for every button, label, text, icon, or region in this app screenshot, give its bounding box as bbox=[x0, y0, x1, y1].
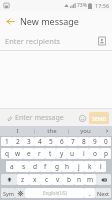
button[interactable]: the bbox=[35, 126, 68, 136]
staticText: g bbox=[55, 162, 59, 171]
staticText: x bbox=[33, 175, 37, 184]
staticText: 9 bbox=[93, 137, 97, 146]
button[interactable]: Shift bbox=[1, 174, 17, 185]
button[interactable]: 4 bbox=[34, 137, 45, 146]
button[interactable]: 9 bbox=[89, 137, 100, 146]
staticText: n bbox=[77, 175, 82, 184]
staticText: w bbox=[15, 149, 21, 158]
button[interactable]: e bbox=[23, 148, 34, 159]
button[interactable]: 1 bbox=[1, 137, 12, 146]
button[interactable]: Attach bbox=[3, 112, 15, 124]
staticText: h bbox=[65, 162, 70, 171]
button[interactable]: Sym bbox=[1, 188, 15, 198]
staticText: 8 bbox=[82, 137, 86, 146]
button[interactable]: h bbox=[62, 161, 73, 172]
button[interactable]: Keyboard settings bbox=[15, 188, 25, 198]
button[interactable]: a bbox=[6, 161, 18, 172]
button[interactable]: . bbox=[84, 188, 95, 198]
staticText: the bbox=[47, 127, 57, 135]
staticText: . bbox=[89, 189, 91, 198]
button[interactable]: v bbox=[52, 174, 63, 185]
button[interactable]: o bbox=[89, 148, 100, 159]
staticText: m bbox=[87, 175, 94, 184]
button[interactable]: i bbox=[78, 148, 89, 159]
button[interactable]: Back bbox=[0, 11, 20, 31]
staticText: q bbox=[5, 149, 9, 158]
button[interactable]: Backspace bbox=[96, 174, 111, 185]
button[interactable]: p bbox=[100, 148, 111, 159]
staticText: j bbox=[78, 162, 80, 171]
staticText: d bbox=[33, 162, 37, 171]
button[interactable]: Enter recipients bbox=[0, 31, 112, 50]
staticText: I bbox=[16, 127, 19, 135]
button[interactable]: n bbox=[74, 174, 85, 185]
staticText: a bbox=[10, 162, 14, 171]
button[interactable]: k bbox=[84, 161, 95, 172]
button[interactable]: y bbox=[56, 148, 67, 159]
staticText: f bbox=[44, 162, 47, 171]
staticText: 4 bbox=[38, 137, 42, 146]
staticText: 17:56 bbox=[95, 2, 110, 9]
staticText: you bbox=[80, 127, 91, 135]
button[interactable]: d bbox=[29, 161, 40, 172]
staticText: 3 bbox=[27, 137, 31, 146]
staticText: 73% bbox=[77, 2, 87, 9]
button[interactable]: r bbox=[34, 148, 45, 159]
staticText: y bbox=[60, 149, 64, 158]
staticText: 7 bbox=[71, 137, 75, 146]
button[interactable]: Space bbox=[25, 188, 84, 198]
button[interactable]: x bbox=[29, 174, 41, 185]
button[interactable]: I bbox=[0, 126, 34, 136]
staticText: k bbox=[88, 162, 92, 171]
button[interactable]: 0 bbox=[100, 137, 111, 146]
staticText: p bbox=[104, 149, 108, 158]
staticText: t bbox=[49, 149, 52, 158]
button[interactable]: q bbox=[1, 148, 12, 159]
button[interactable]: you bbox=[69, 126, 102, 136]
staticText: b bbox=[67, 175, 71, 184]
staticText: s bbox=[22, 162, 26, 171]
button[interactable]: l bbox=[95, 161, 106, 172]
staticText: Enter message bbox=[15, 113, 76, 123]
button[interactable]: 6 bbox=[56, 137, 67, 146]
button[interactable]: 2 bbox=[12, 137, 23, 146]
button[interactable]: Emoji bbox=[76, 112, 88, 124]
button[interactable]: z bbox=[17, 174, 29, 185]
staticText: 1 bbox=[5, 137, 9, 146]
staticText: i bbox=[83, 149, 85, 158]
button[interactable]: 8 bbox=[78, 137, 89, 146]
button[interactable]: Next bbox=[95, 188, 111, 198]
button[interactable]: t bbox=[45, 148, 56, 159]
staticText: u bbox=[70, 149, 75, 158]
button[interactable]: g bbox=[51, 161, 62, 172]
button[interactable]: More suggestions bbox=[102, 126, 112, 136]
button[interactable]: f bbox=[40, 161, 51, 172]
button[interactable]: 3 bbox=[23, 137, 34, 146]
button[interactable]: 5 bbox=[45, 137, 56, 146]
staticText: c bbox=[45, 175, 49, 184]
staticText: l bbox=[100, 162, 102, 171]
button[interactable]: b bbox=[63, 174, 74, 185]
button[interactable]: c bbox=[41, 174, 52, 185]
button[interactable]: u bbox=[67, 148, 78, 159]
staticText: SEND bbox=[92, 115, 107, 122]
staticText: 5 bbox=[49, 137, 53, 146]
button[interactable]: SEND bbox=[89, 112, 109, 124]
staticText: o bbox=[93, 149, 97, 158]
staticText: v bbox=[56, 175, 60, 184]
button[interactable]: m bbox=[85, 174, 96, 185]
button[interactable]: Add recipient from contacts bbox=[95, 34, 108, 47]
staticText: English(US) bbox=[43, 190, 67, 196]
staticText: r bbox=[38, 149, 41, 158]
staticText: e bbox=[27, 149, 31, 158]
staticText: Sym bbox=[3, 190, 14, 197]
staticText: Next bbox=[97, 190, 110, 197]
button[interactable]: j bbox=[73, 161, 84, 172]
staticText: z bbox=[21, 175, 25, 184]
button[interactable]: 7 bbox=[67, 137, 78, 146]
button[interactable]: s bbox=[18, 161, 29, 172]
staticText: 2 bbox=[16, 137, 20, 146]
staticText: 0 bbox=[104, 137, 108, 146]
button[interactable]: w bbox=[12, 148, 23, 159]
staticText: Enter recipients bbox=[5, 36, 95, 46]
